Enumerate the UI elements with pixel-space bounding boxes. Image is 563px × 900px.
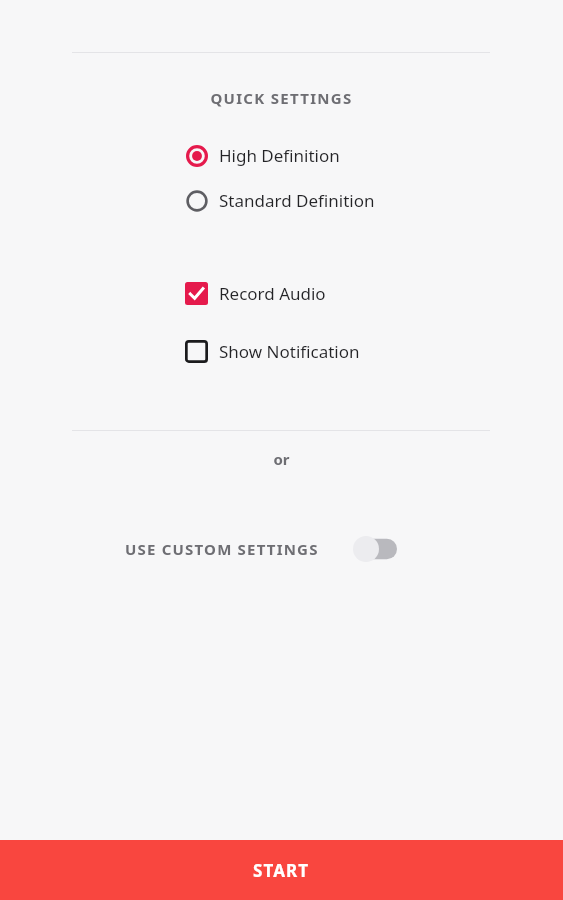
staticText: High Definition bbox=[219, 144, 340, 167]
staticText: Record Audio bbox=[219, 282, 326, 305]
button[interactable]: START bbox=[0, 840, 563, 900]
staticText: QUICK SETTINGS bbox=[0, 88, 563, 108]
button[interactable]: Show Notification bbox=[0, 322, 563, 380]
staticText: START bbox=[253, 859, 310, 882]
staticText: Standard Definition bbox=[219, 189, 375, 212]
staticText: or bbox=[0, 449, 563, 469]
button[interactable]: Standard Definition bbox=[0, 178, 563, 223]
button[interactable]: High Definition bbox=[0, 133, 563, 178]
staticText: USE CUSTOM SETTINGS bbox=[125, 539, 319, 559]
button[interactable]: Record Audio bbox=[0, 264, 563, 322]
staticText: Show Notification bbox=[219, 340, 360, 363]
button[interactable]: USE CUSTOM SETTINGS bbox=[0, 526, 563, 572]
